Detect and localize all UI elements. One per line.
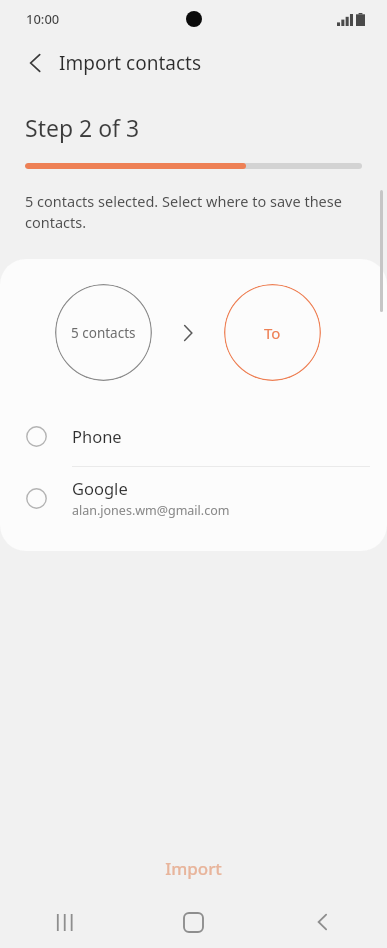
staticText: 5 contacts selected. Select where to sav… (25, 191, 345, 233)
button[interactable]: Back (18, 46, 52, 80)
button[interactable]: Import (0, 840, 387, 896)
staticText: Import contacts (59, 50, 201, 76)
staticText: Google (72, 477, 128, 499)
staticText: Phone (72, 425, 122, 447)
staticText: 5 contacts (71, 324, 136, 342)
button[interactable]: Recent apps (0, 896, 129, 948)
button[interactable]: Back (258, 896, 387, 948)
button[interactable]: 5 contacts (55, 284, 152, 381)
staticText: Step 2 of 3 (25, 112, 140, 143)
button[interactable]: Home (129, 896, 258, 948)
staticText: 10:00 (26, 10, 60, 28)
staticText: Import (165, 857, 222, 880)
button[interactable]: To (224, 284, 321, 381)
staticText: To (264, 323, 281, 343)
button[interactable]: Phone (0, 406, 387, 466)
button[interactable]: Google (0, 467, 387, 529)
staticText: alan.jones.wm@gmail.com (72, 502, 230, 519)
